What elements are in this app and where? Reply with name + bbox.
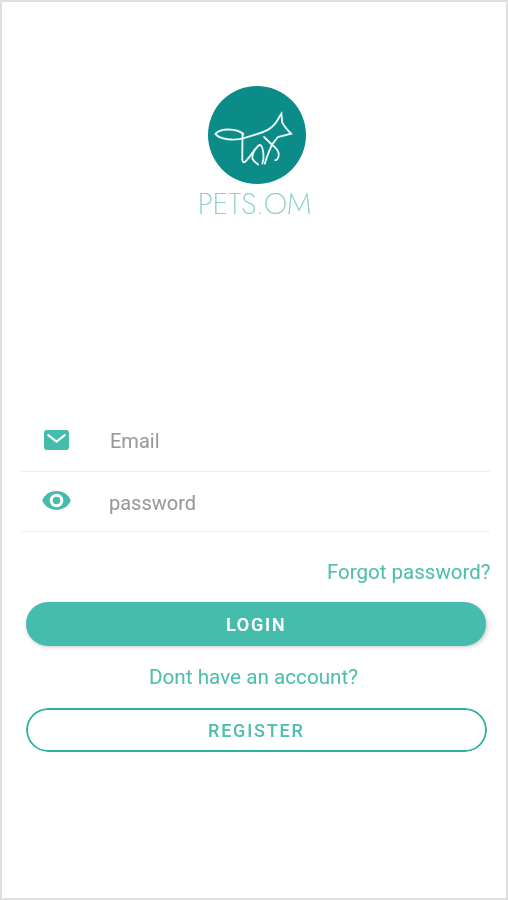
button[interactable]: Email (2, 412, 506, 471)
staticText: LOGIN (226, 614, 287, 635)
staticText: password (109, 491, 197, 514)
other: Show password (42, 491, 71, 510)
staticText: Forgot password? (327, 560, 491, 584)
button[interactable]: REGISTER (26, 708, 487, 752)
button[interactable]: Forgot password? (323, 556, 495, 588)
staticText: REGISTER (208, 720, 305, 741)
staticText: Email (110, 429, 160, 452)
button[interactable]: Show password (2, 472, 506, 531)
other: Email (44, 430, 69, 450)
staticText: PETS.OM (198, 182, 312, 225)
button[interactable]: LOGIN (26, 602, 486, 646)
button[interactable]: Dont have an account? (145, 661, 363, 693)
